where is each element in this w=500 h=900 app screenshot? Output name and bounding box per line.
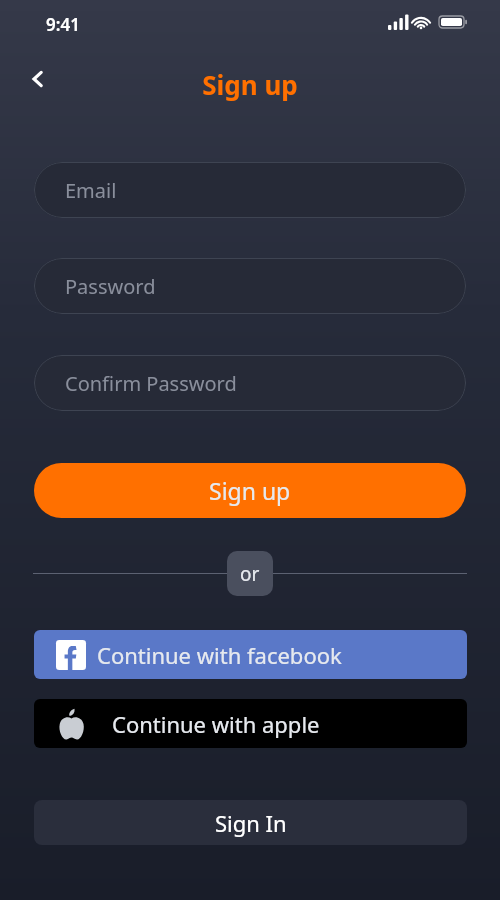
staticText: Email [65, 177, 117, 204]
staticText: Confirm Password [65, 370, 237, 397]
button[interactable]: Continue with apple [34, 699, 467, 748]
button[interactable]: Continue with facebook [34, 630, 467, 679]
staticText: Continue with facebook [97, 640, 342, 670]
staticText: Password [65, 273, 156, 300]
staticText: Sign up [209, 475, 291, 506]
button[interactable]: Email [34, 162, 466, 218]
staticText: or [240, 561, 260, 587]
staticText: Sign up [0, 67, 500, 102]
button[interactable]: Back [17, 58, 59, 100]
button[interactable]: Confirm Password [34, 355, 466, 411]
button[interactable]: Sign In [34, 800, 467, 845]
button[interactable]: Sign up [34, 463, 466, 518]
button[interactable]: Password [34, 258, 466, 314]
staticText: Sign In [215, 808, 287, 838]
staticText: 9:41 [46, 13, 80, 36]
staticText: Continue with apple [112, 709, 320, 739]
